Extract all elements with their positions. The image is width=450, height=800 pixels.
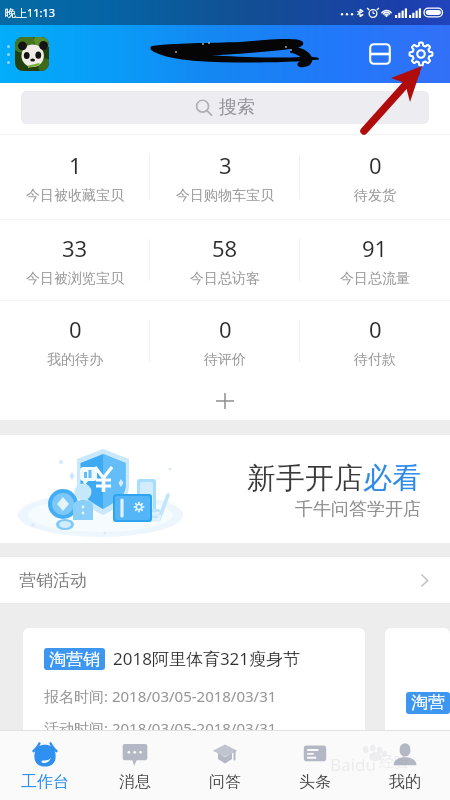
- staticText: 淘营销: [49, 649, 100, 670]
- button[interactable]: 营销活动: [0, 557, 450, 603]
- button[interactable]: 0: [0, 301, 150, 381]
- staticText: 待评价: [204, 351, 246, 369]
- button[interactable]: 1: [0, 135, 150, 219]
- button[interactable]: 淘营销: [385, 628, 450, 758]
- button[interactable]: 消息: [90, 731, 180, 800]
- staticText: 0: [369, 150, 382, 180]
- staticText: 必看: [363, 460, 421, 497]
- button[interactable]: 新手开店: [0, 435, 450, 543]
- staticText: 0: [219, 314, 232, 344]
- staticText: 我的: [389, 772, 421, 792]
- button[interactable]: 搜索: [21, 91, 429, 124]
- staticText: 问答: [209, 772, 241, 792]
- button[interactable]: 我的: [360, 731, 450, 800]
- staticText: 今日总访客: [190, 270, 260, 288]
- button[interactable]: Shop avatar: [15, 37, 49, 71]
- staticText: 工作台: [21, 772, 69, 792]
- button[interactable]: 0: [300, 301, 450, 381]
- staticText: 0: [69, 314, 82, 344]
- staticText: 我的待办: [47, 351, 103, 369]
- button[interactable]: 问答: [180, 731, 270, 800]
- staticText: 营销活动: [19, 570, 87, 591]
- staticText: 千牛问答学开店: [295, 498, 421, 521]
- staticText: 0: [369, 314, 382, 344]
- staticText: 新手开店: [247, 460, 363, 497]
- staticText: 今日总流量: [340, 270, 410, 288]
- staticText: 58: [212, 233, 238, 263]
- staticText: 待付款: [354, 351, 396, 369]
- staticText: 3: [219, 150, 232, 180]
- staticText: 搜索: [219, 96, 255, 119]
- button[interactable]: Split view: [362, 36, 398, 72]
- staticText: 晚上11:13: [5, 5, 56, 20]
- button[interactable]: 淘营销: [23, 628, 365, 758]
- staticText: 2018阿里体育321瘦身节: [113, 647, 301, 670]
- staticText: 报名时间: 2018/03/05-2018/03/31: [44, 686, 277, 706]
- button[interactable]: 91: [300, 220, 450, 300]
- button[interactable]: 33: [0, 220, 150, 300]
- button[interactable]: 头条: [270, 731, 360, 800]
- staticText: 淘营销: [411, 692, 445, 714]
- staticText: 消息: [119, 772, 151, 792]
- staticText: 待发货: [354, 187, 396, 205]
- button[interactable]: Settings: [403, 36, 439, 72]
- staticText: 1: [69, 150, 82, 180]
- button[interactable]: 58: [150, 220, 300, 300]
- staticText: Baidu: [330, 753, 376, 776]
- button[interactable]: 3: [150, 135, 300, 219]
- button[interactable]: 工作台: [0, 731, 90, 800]
- staticText: 今日购物车宝贝: [176, 187, 274, 205]
- button[interactable]: 0: [150, 301, 300, 381]
- staticText: 33: [62, 233, 88, 263]
- staticText: 今日被收藏宝贝: [26, 187, 124, 205]
- staticText: 经验: [379, 753, 409, 772]
- staticText: 活动时间: 2018/03/05-2018/03/31: [44, 718, 277, 738]
- staticText: 今日被浏览宝贝: [26, 270, 124, 288]
- button[interactable]: 0: [300, 135, 450, 219]
- staticText: 91: [362, 233, 388, 263]
- staticText: 头条: [299, 772, 331, 792]
